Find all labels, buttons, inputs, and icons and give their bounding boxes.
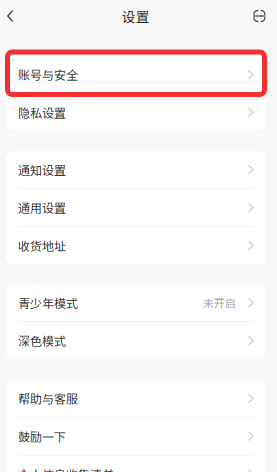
- button[interactable]: 深色模式: [6, 322, 266, 359]
- staticText: 深色模式: [18, 332, 66, 349]
- button[interactable]: 收货地址: [6, 227, 266, 264]
- staticText: 未开启: [203, 295, 236, 311]
- staticText: 通知设置: [18, 161, 66, 178]
- staticText: 收货地址: [18, 237, 66, 254]
- button[interactable]: 个人信息收集清单: [6, 455, 266, 472]
- button[interactable]: 账号与安全: [6, 56, 266, 93]
- button[interactable]: Scan code: [243, 0, 277, 32]
- button[interactable]: 青少年模式: [6, 284, 266, 321]
- button[interactable]: 通用设置: [6, 189, 266, 226]
- button[interactable]: Back: [0, 0, 23, 32]
- button[interactable]: 帮助与客服: [6, 380, 266, 417]
- staticText: 青少年模式: [18, 294, 78, 311]
- button[interactable]: 通知设置: [6, 151, 266, 188]
- staticText: 隐私设置: [18, 104, 66, 121]
- staticText: 通用设置: [18, 199, 66, 216]
- staticText: 帮助与客服: [18, 390, 78, 407]
- staticText: 设置: [122, 6, 150, 26]
- button[interactable]: 隐私设置: [6, 94, 266, 131]
- staticText: 账号与安全: [18, 66, 78, 83]
- staticText: 鼓励一下: [18, 427, 66, 445]
- staticText: 个人信息收集清单: [18, 465, 114, 472]
- button[interactable]: 鼓励一下: [6, 418, 266, 455]
